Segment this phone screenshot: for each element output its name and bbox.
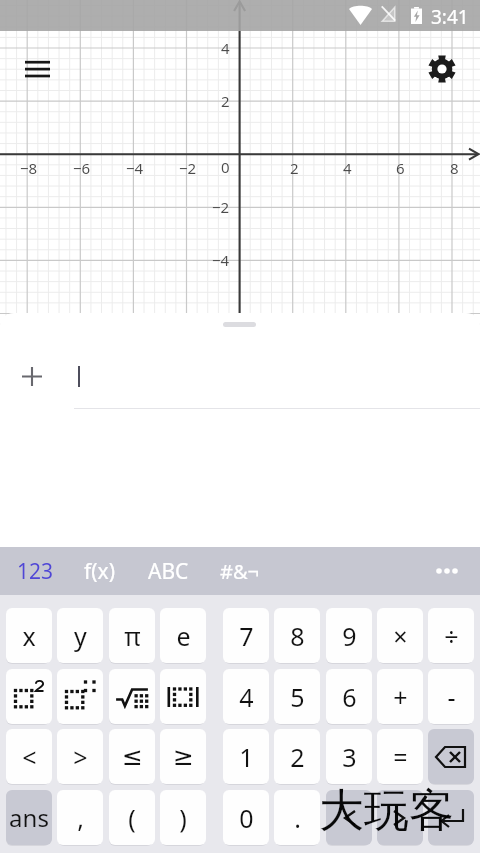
staticText: 1 xyxy=(239,740,254,774)
button[interactable]: 1 xyxy=(223,729,269,784)
staticText: 大玩客 xyxy=(319,783,454,840)
button[interactable]: 6 xyxy=(326,669,372,724)
staticText: x xyxy=(22,619,36,653)
button[interactable]: 7 xyxy=(223,608,269,663)
staticText: , xyxy=(77,801,84,835)
staticText: −2 xyxy=(212,197,230,217)
staticText: π xyxy=(124,619,141,653)
staticText: 6 xyxy=(342,680,357,714)
staticText: 4 xyxy=(239,680,254,714)
button[interactable]: Power xyxy=(57,669,103,724)
staticText: 4 xyxy=(221,38,230,58)
button[interactable]: Square xyxy=(6,669,52,724)
staticText: 7 xyxy=(239,619,254,653)
staticText: 6 xyxy=(396,158,405,178)
button[interactable]: x xyxy=(6,608,52,663)
staticText: e xyxy=(176,619,191,653)
button[interactable]: #&¬ xyxy=(212,551,267,591)
staticText: ABC xyxy=(148,557,189,586)
staticText: −6 xyxy=(73,158,91,178)
button[interactable]: 4 xyxy=(223,669,269,724)
button[interactable]: 2 xyxy=(274,729,320,784)
staticText: 9 xyxy=(342,619,357,653)
button[interactable]: , xyxy=(57,790,103,845)
button[interactable]: . xyxy=(274,790,320,845)
button[interactable]: 0 xyxy=(223,790,269,845)
button[interactable]: ÷ xyxy=(428,608,474,663)
staticText: 2 xyxy=(290,158,299,178)
staticText: 4 xyxy=(343,158,352,178)
staticText: y xyxy=(74,619,87,653)
staticText: 2 xyxy=(290,740,305,774)
button[interactable]: ans xyxy=(6,790,52,845)
button[interactable]: ABC xyxy=(140,551,197,591)
staticText: 0 xyxy=(221,157,230,177)
staticText: −2 xyxy=(179,158,197,178)
button[interactable]: 123 xyxy=(10,551,60,591)
staticText: × xyxy=(393,619,408,653)
staticText: + xyxy=(393,680,408,714)
staticText: −8 xyxy=(20,158,38,178)
button[interactable]: 5 xyxy=(274,669,320,724)
button[interactable]: Add expression xyxy=(10,354,54,398)
staticText: 123 xyxy=(17,557,54,586)
staticText: ans xyxy=(9,801,49,834)
button[interactable]: π xyxy=(109,608,155,663)
staticText: 8 xyxy=(290,619,305,653)
button[interactable]: 3 xyxy=(326,729,372,784)
button[interactable]: Menu xyxy=(15,48,59,92)
staticText: 3:41 xyxy=(431,4,469,27)
button[interactable]: e xyxy=(160,608,206,663)
staticText: . xyxy=(294,801,301,835)
button[interactable]: Move right xyxy=(377,790,423,845)
staticText: ≤ xyxy=(122,742,143,771)
button[interactable]: ) xyxy=(160,790,206,845)
staticText: 8 xyxy=(450,158,459,178)
button[interactable]: 8 xyxy=(274,608,320,663)
button[interactable]: + xyxy=(377,669,423,724)
staticText: #&¬ xyxy=(220,558,259,585)
button[interactable]: > xyxy=(57,729,103,784)
button[interactable]: < xyxy=(6,729,52,784)
button[interactable]: 9 xyxy=(326,608,372,663)
button[interactable]: ≤ xyxy=(109,729,155,784)
staticText: ) xyxy=(179,801,187,835)
button[interactable]: = xyxy=(377,729,423,784)
button[interactable]: × xyxy=(377,608,423,663)
button[interactable]: Absolute value xyxy=(160,669,206,724)
button[interactable]: More options xyxy=(425,549,469,593)
staticText: > xyxy=(73,740,88,774)
staticText: −4 xyxy=(212,250,230,270)
staticText: −4 xyxy=(126,158,144,178)
button[interactable]: Square root xyxy=(109,669,155,724)
button[interactable]: Enter xyxy=(428,790,474,845)
staticText: f(x) xyxy=(84,557,115,586)
button[interactable]: - xyxy=(428,669,474,724)
button[interactable]: Backspace xyxy=(428,729,474,784)
button[interactable]: Move left xyxy=(326,790,372,845)
button[interactable]: ≥ xyxy=(160,729,206,784)
button[interactable]: ( xyxy=(109,790,155,845)
staticText: ≥ xyxy=(173,742,194,771)
staticText: ( xyxy=(128,801,136,835)
button[interactable]: y xyxy=(57,608,103,663)
staticText: 2 xyxy=(221,91,230,111)
staticText: 3 xyxy=(342,740,357,774)
button[interactable]: Settings xyxy=(420,47,464,91)
staticText: ÷ xyxy=(444,619,459,653)
staticText: < xyxy=(22,740,37,774)
staticText: = xyxy=(393,740,408,774)
staticText: 0 xyxy=(239,801,254,835)
staticText: 5 xyxy=(290,680,305,714)
staticText: - xyxy=(447,680,456,714)
button[interactable]: f(x) xyxy=(75,551,123,591)
